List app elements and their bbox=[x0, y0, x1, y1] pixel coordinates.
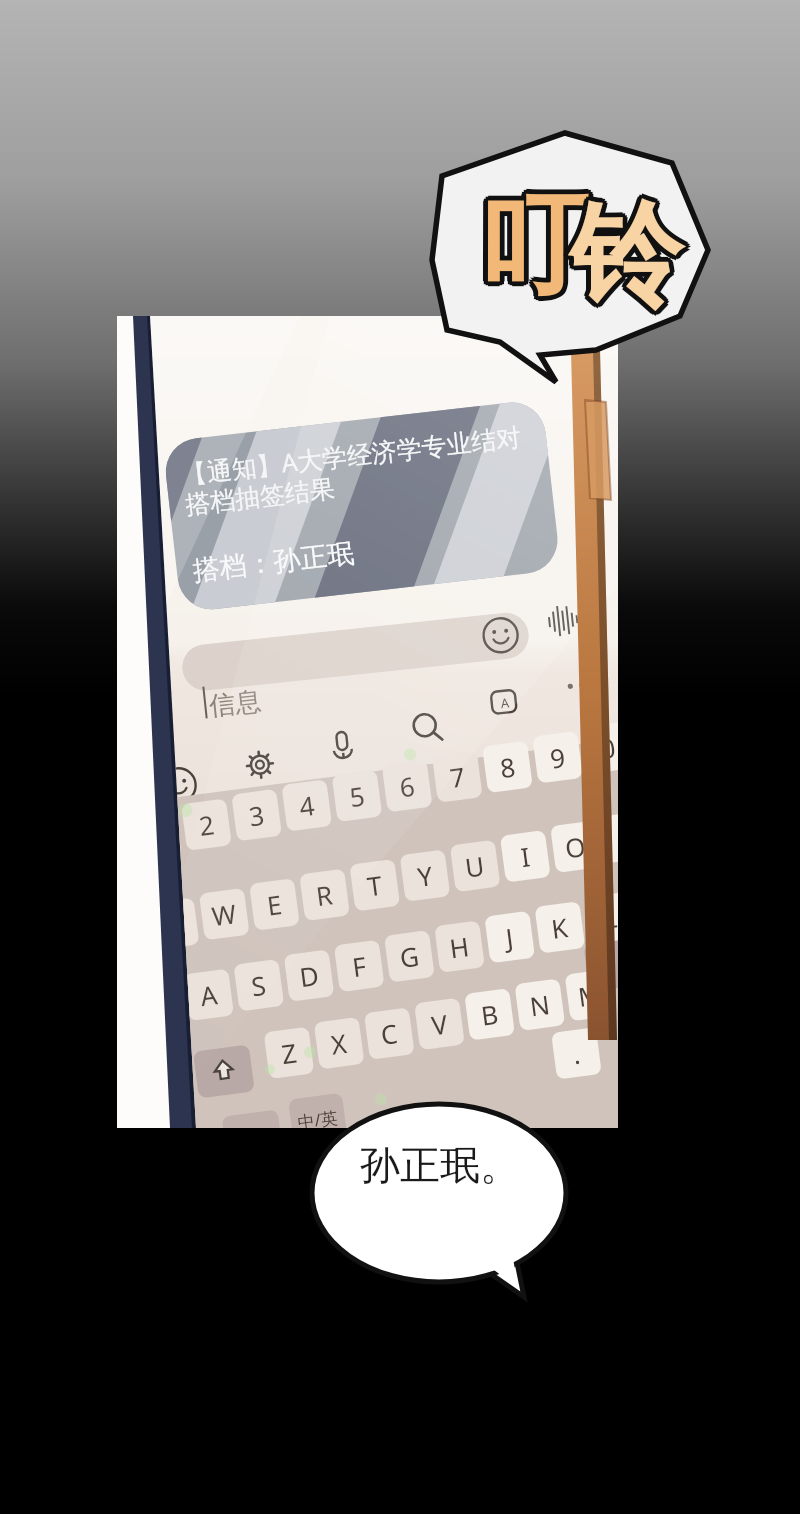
button[interactable]: Comic panel: phone notification bbox=[0, 0, 800, 1514]
